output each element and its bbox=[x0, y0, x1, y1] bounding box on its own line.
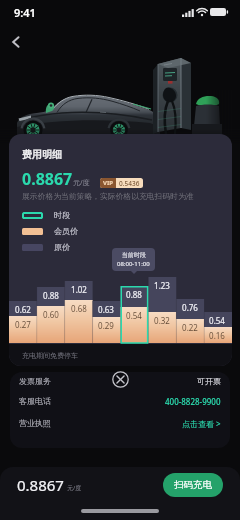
staticText: 0.29 bbox=[98, 320, 114, 331]
staticText: 0.8867 bbox=[17, 475, 64, 495]
staticText: 会员价 bbox=[54, 226, 78, 236]
staticText: 0.76 bbox=[182, 302, 198, 313]
staticText: 元/度 bbox=[73, 178, 90, 188]
button[interactable]: Back bbox=[4, 30, 28, 54]
staticText: 400-8828-9900 bbox=[165, 396, 221, 407]
button[interactable]: 营业执照 bbox=[19, 412, 221, 434]
staticText: 费用明细 bbox=[22, 148, 62, 161]
staticText: 展示价格为当前策略，实际价格以充电扫码时为准 bbox=[22, 191, 194, 201]
staticText: 扫码充电 bbox=[174, 479, 212, 491]
button[interactable]: Close bbox=[108, 367, 132, 391]
staticText: 充电期间免费停车 bbox=[22, 351, 78, 360]
staticText: 0.88 bbox=[43, 290, 59, 301]
staticText: 0.62 bbox=[15, 304, 31, 315]
staticText: 0.68 bbox=[71, 303, 87, 314]
staticText: 0.63 bbox=[98, 304, 114, 315]
staticText: 1.02 bbox=[71, 284, 87, 295]
staticText: 0.54 bbox=[126, 310, 142, 321]
staticText: 0.27 bbox=[15, 319, 31, 330]
staticText: 0.60 bbox=[43, 309, 59, 320]
staticText: 1.23 bbox=[154, 280, 170, 291]
staticText: 0.22 bbox=[182, 322, 198, 333]
staticText: 原价 bbox=[54, 242, 70, 252]
staticText: 9:41 bbox=[14, 5, 36, 20]
staticText: 发票服务 bbox=[19, 376, 51, 386]
staticText: 元/度 bbox=[67, 484, 82, 492]
staticText: 可开票 bbox=[197, 376, 221, 386]
staticText: 0.16 bbox=[209, 330, 225, 341]
staticText: VIP bbox=[103, 179, 113, 187]
staticText: 08:00-11:00 bbox=[117, 260, 150, 268]
button[interactable]: 扫码充电 bbox=[163, 473, 223, 497]
staticText: 0.32 bbox=[154, 315, 170, 326]
staticText: 客服电话 bbox=[19, 396, 51, 406]
button[interactable]: VIP bbox=[100, 178, 143, 188]
staticText: 0.8867 bbox=[22, 168, 73, 190]
button[interactable]: 客服电话 bbox=[19, 390, 221, 412]
button[interactable]: 发票服务 bbox=[19, 372, 221, 390]
staticText: 0.88 bbox=[126, 289, 142, 300]
staticText: 营业执照 bbox=[19, 418, 51, 428]
staticText: 0.5436 bbox=[119, 179, 140, 188]
staticText: 点击查看 > bbox=[182, 418, 221, 429]
staticText: 当前时段 bbox=[122, 251, 146, 259]
staticText: 时段 bbox=[54, 210, 70, 220]
staticText: 0.54 bbox=[209, 315, 225, 326]
